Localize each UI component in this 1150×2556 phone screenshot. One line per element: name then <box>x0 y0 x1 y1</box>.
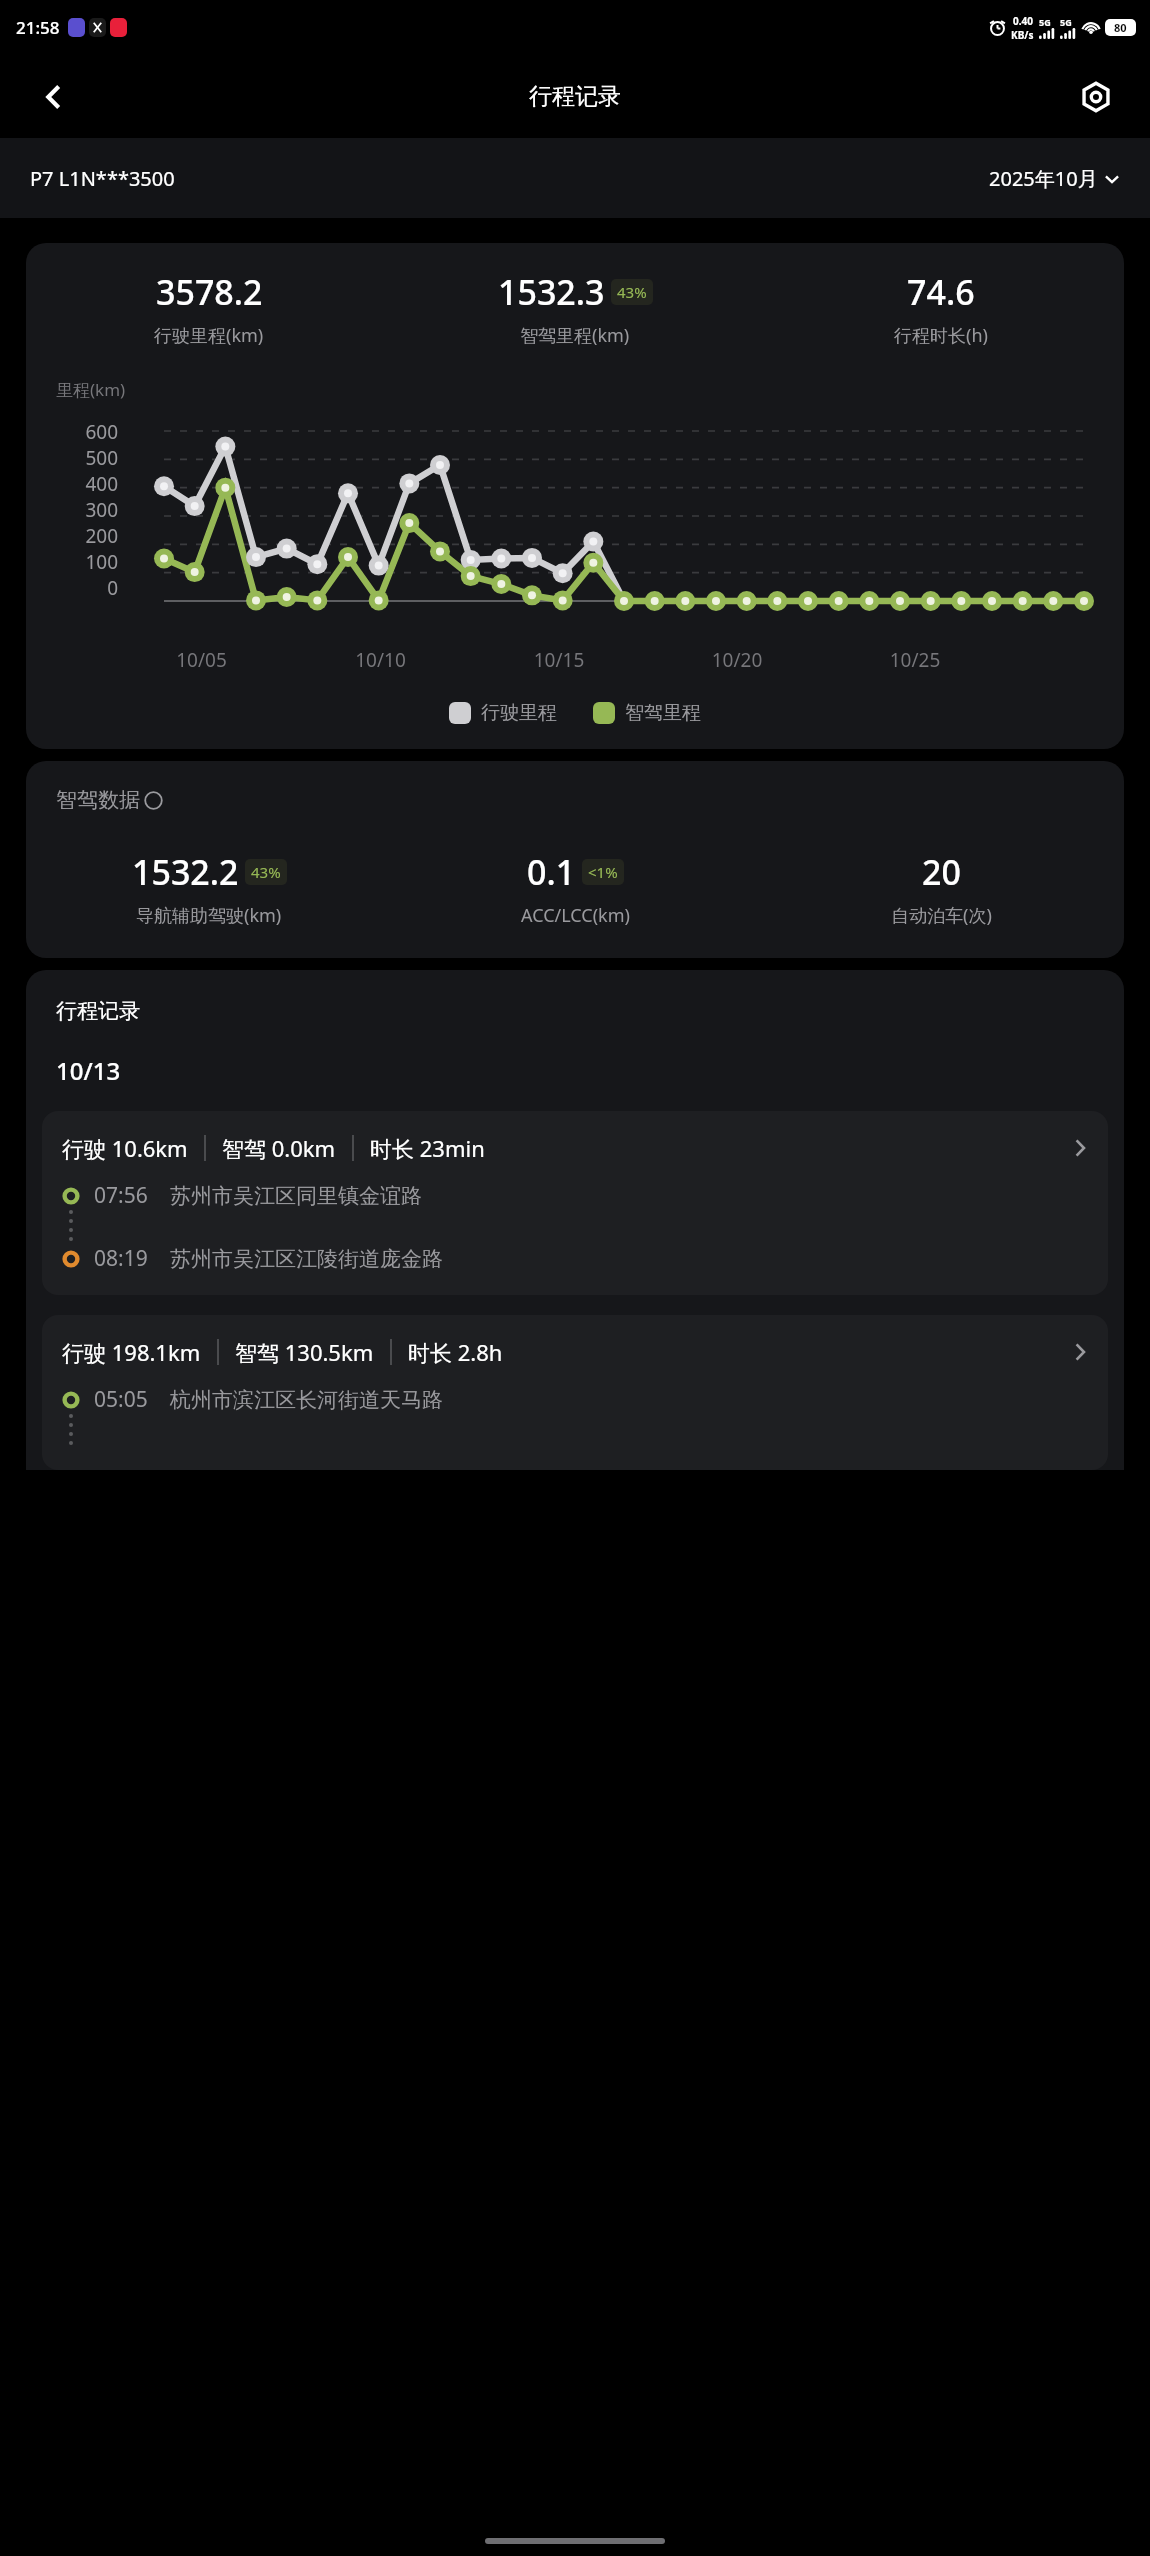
staticText: 10/25 <box>826 647 1004 673</box>
button[interactable]: 智驾数据 <box>56 787 163 813</box>
staticText: 05:05 <box>94 1385 148 1414</box>
staticText: 导航辅助驾驶(km) <box>136 903 282 928</box>
staticText: 10/05 <box>112 647 291 673</box>
staticText: 1532.2 <box>132 849 239 895</box>
staticText: 里程(km) <box>56 378 126 401</box>
staticText: 43% <box>617 282 647 302</box>
staticText: 600 <box>42 419 118 445</box>
staticText: 2025年10月 <box>989 165 1098 192</box>
staticText: 10/15 <box>470 647 648 673</box>
staticText: 07:56 <box>94 1181 148 1210</box>
staticText: 500 <box>42 445 118 471</box>
button[interactable]: 2025年10月 <box>989 165 1120 192</box>
staticText: 20 <box>922 849 961 895</box>
staticText: 行驶里程(km) <box>154 323 264 348</box>
staticText: P7 L1N***3500 <box>30 165 175 192</box>
staticText: 400 <box>42 471 118 497</box>
staticText: 0 <box>42 575 118 601</box>
staticText: 智驾数据 <box>56 787 140 813</box>
staticText: 智驾里程(km) <box>520 323 630 348</box>
staticText: 08:19 <box>94 1244 148 1273</box>
staticText: 3578.2 <box>156 269 263 315</box>
staticText: 杭州市滨江区长河街道天马路 <box>170 1387 443 1413</box>
staticText: 行程记录 <box>529 82 621 111</box>
button[interactable]: Settings <box>1068 69 1124 125</box>
button[interactable]: 行驶 10.6km <box>42 1111 1108 1295</box>
button[interactable]: Back <box>26 69 82 125</box>
staticText: 100 <box>42 549 118 575</box>
staticText: 80 <box>1114 20 1127 35</box>
staticText: 时长 2.8h <box>408 1337 503 1367</box>
staticText: 10/10 <box>291 647 470 673</box>
staticText: ACC/LCC(km) <box>521 903 630 928</box>
staticText: 智驾 130.5km <box>235 1337 374 1367</box>
staticText: 43% <box>251 862 281 882</box>
staticText: 行程时长(h) <box>894 323 988 348</box>
button[interactable]: 行驶 198.1km <box>42 1315 1108 1470</box>
staticText: 5G <box>1060 16 1072 28</box>
staticText: 74.6 <box>907 269 975 315</box>
staticText: 自动泊车(次) <box>891 903 992 928</box>
staticText: 行驶 198.1km <box>62 1337 201 1367</box>
staticText: 苏州市吴江区江陵街道庞金路 <box>170 1246 443 1272</box>
staticText: 0.1 <box>527 849 576 895</box>
staticText: 5G <box>1039 16 1051 28</box>
staticText: 0.40 <box>1013 14 1033 28</box>
staticText: 行驶里程 <box>481 701 557 725</box>
staticText: 10/13 <box>56 1054 121 1087</box>
staticText: <1% <box>588 862 618 882</box>
staticText: 10/20 <box>648 647 826 673</box>
staticText: 时长 23min <box>370 1133 485 1163</box>
staticText: 苏州市吴江区同里镇金谊路 <box>170 1183 422 1209</box>
staticText: 300 <box>42 497 118 523</box>
staticText: 智驾里程 <box>625 701 701 725</box>
staticText: 智驾 0.0km <box>222 1133 336 1163</box>
staticText: 行驶 10.6km <box>62 1133 188 1163</box>
staticText: 21:58 <box>16 16 60 39</box>
staticText: 200 <box>42 523 118 549</box>
staticText: KB/s <box>1011 28 1034 42</box>
staticText: 1532.3 <box>498 269 605 315</box>
staticText: 行程记录 <box>56 998 140 1024</box>
